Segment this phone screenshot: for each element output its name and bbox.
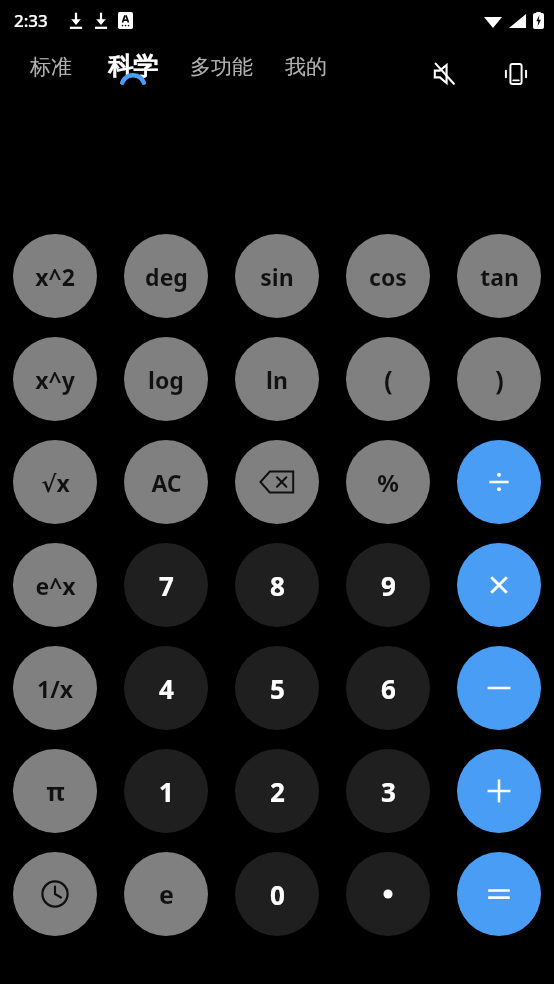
staticText: 7 (159, 568, 174, 603)
button[interactable]: cos (346, 234, 430, 318)
button[interactable]: % (346, 440, 430, 524)
staticText: 科学 (108, 51, 158, 82)
button[interactable]: 科学 (106, 51, 160, 98)
staticText: ) (495, 362, 504, 397)
staticText: 2:33 (14, 9, 48, 32)
staticText: 1/x (37, 673, 73, 704)
button[interactable]: Decimal point (346, 852, 430, 936)
staticText: deg (145, 261, 188, 292)
staticText: 4 (159, 671, 174, 706)
staticText: 9 (381, 568, 396, 603)
staticText: 8 (270, 568, 285, 603)
button[interactable]: tan (457, 234, 541, 318)
button[interactable]: Multiply (457, 543, 541, 627)
button[interactable]: 标准 (28, 54, 74, 96)
button[interactable]: e (124, 852, 208, 936)
staticText: x^y (35, 364, 75, 395)
button[interactable]: 3 (346, 749, 430, 833)
button[interactable]: ln (235, 337, 319, 421)
staticText: sin (260, 261, 294, 292)
button[interactable]: Equals (457, 852, 541, 936)
button[interactable]: 5 (235, 646, 319, 730)
button[interactable]: 4 (124, 646, 208, 730)
staticText: x^2 (35, 261, 75, 292)
staticText: AC (151, 467, 182, 498)
button[interactable]: ) (457, 337, 541, 421)
staticText: tan (480, 261, 519, 292)
staticText: log (148, 364, 184, 395)
button[interactable]: x^y (13, 337, 97, 421)
staticText: 我的 (285, 54, 327, 80)
staticText: π (46, 774, 65, 808)
staticText: e (159, 877, 174, 911)
button[interactable]: Divide (457, 440, 541, 524)
button[interactable]: x^2 (13, 234, 97, 318)
staticText: 5 (270, 671, 285, 706)
staticText: % (377, 466, 399, 499)
staticText: cos (369, 261, 407, 292)
button[interactable]: 1 (124, 749, 208, 833)
button[interactable]: 2 (235, 749, 319, 833)
button[interactable]: π (13, 749, 97, 833)
button[interactable]: 6 (346, 646, 430, 730)
staticText: 1 (159, 774, 174, 809)
staticText: 3 (381, 774, 396, 809)
button[interactable]: 8 (235, 543, 319, 627)
button[interactable]: log (124, 337, 208, 421)
button[interactable]: Vibrate (496, 54, 536, 94)
staticText: 6 (381, 671, 396, 706)
button[interactable]: AC (124, 440, 208, 524)
staticText: 多功能 (190, 54, 253, 80)
button[interactable]: 9 (346, 543, 430, 627)
button[interactable]: History (13, 852, 97, 936)
staticText: 标准 (30, 54, 72, 80)
button[interactable]: 1/x (13, 646, 97, 730)
staticText: ( (384, 362, 393, 397)
button[interactable]: √x (13, 440, 97, 524)
button[interactable]: 7 (124, 543, 208, 627)
staticText: e^x (35, 570, 76, 601)
button[interactable]: Minus (457, 646, 541, 730)
button[interactable]: sin (235, 234, 319, 318)
button[interactable]: ( (346, 337, 430, 421)
staticText: ln (266, 364, 288, 395)
button[interactable]: Mute (426, 54, 466, 94)
staticText: 2 (270, 774, 285, 809)
staticText: √x (41, 467, 70, 498)
button[interactable]: 0 (235, 852, 319, 936)
staticText: 0 (270, 877, 285, 912)
button[interactable]: deg (124, 234, 208, 318)
button[interactable]: 多功能 (188, 54, 255, 96)
button[interactable]: e^x (13, 543, 97, 627)
button[interactable]: Backspace (235, 440, 319, 524)
button[interactable]: 我的 (283, 54, 329, 96)
button[interactable]: Plus (457, 749, 541, 833)
